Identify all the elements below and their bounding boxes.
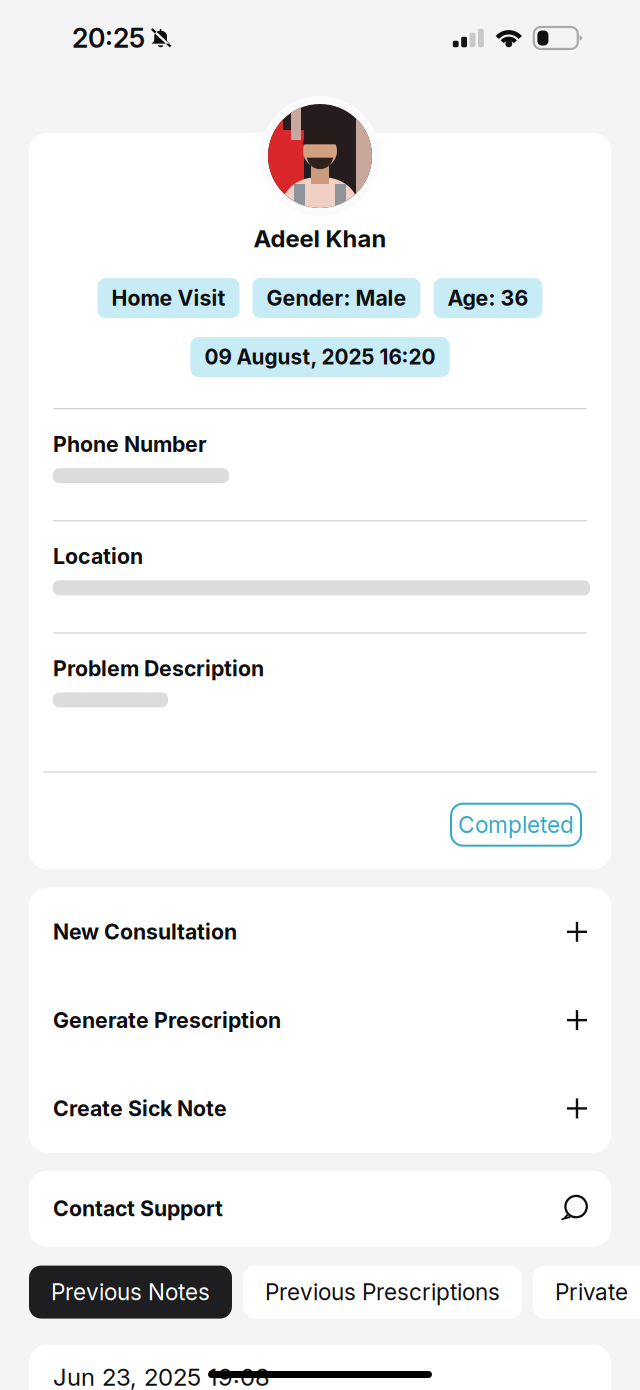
button[interactable]: New Consultation <box>29 888 611 976</box>
staticText: Generate Prescription <box>53 1007 281 1033</box>
staticText: 20:25 <box>72 22 145 54</box>
button[interactable]: Generate Prescription <box>29 976 611 1064</box>
button[interactable]: Previous Notes <box>29 1266 232 1319</box>
button[interactable]: Create Sick Note <box>29 1064 611 1153</box>
staticText: Problem Description <box>53 656 264 681</box>
button[interactable]: Contact Support <box>29 1171 611 1247</box>
staticText: Previous Prescriptions <box>265 1278 500 1306</box>
staticText: Age: 36 <box>447 285 528 311</box>
staticText: Previous Notes <box>51 1278 210 1306</box>
staticText: Gender: Male <box>266 285 406 311</box>
staticText: Contact Support <box>53 1196 223 1221</box>
button[interactable]: Private <box>533 1266 640 1319</box>
staticText: Private <box>555 1278 628 1306</box>
staticText: Phone Number <box>53 431 207 457</box>
staticText: Location <box>53 543 143 569</box>
button[interactable]: Previous Prescriptions <box>243 1266 522 1319</box>
staticText: 09 August, 2025 16:20 <box>204 344 435 370</box>
staticText: Create Sick Note <box>53 1095 227 1121</box>
staticText: Jun 23, 2025 19:08 <box>53 1363 270 1390</box>
staticText: New Consultation <box>53 919 237 945</box>
staticText: Adeel Khan <box>253 224 386 253</box>
staticText: Home Visit <box>111 285 225 311</box>
button[interactable]: Completed <box>451 804 581 846</box>
staticText: Completed <box>458 811 574 838</box>
